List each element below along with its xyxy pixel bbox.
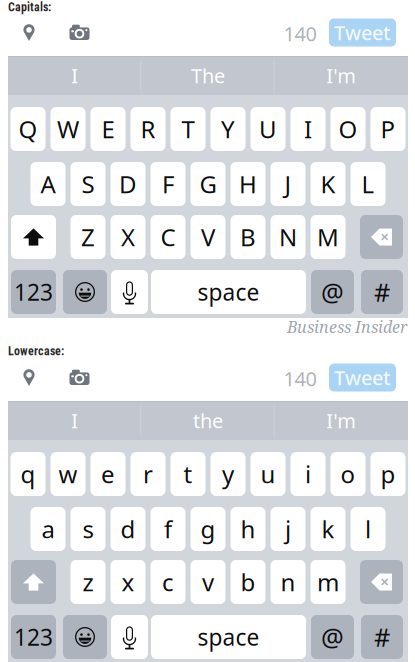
staticText: P bbox=[380, 113, 395, 145]
button[interactable]: W bbox=[50, 107, 85, 151]
staticText: m bbox=[317, 566, 339, 598]
button[interactable]: Delete bbox=[360, 560, 403, 604]
button[interactable]: d bbox=[110, 507, 145, 551]
staticText: @ bbox=[321, 620, 344, 654]
button[interactable]: s bbox=[70, 507, 105, 551]
staticText: 123 bbox=[14, 277, 53, 307]
staticText: H bbox=[239, 168, 257, 200]
button[interactable]: c bbox=[150, 560, 185, 604]
button[interactable]: @ bbox=[311, 615, 354, 659]
button[interactable]: B bbox=[230, 215, 265, 259]
button[interactable]: D bbox=[110, 162, 145, 206]
button[interactable]: z bbox=[70, 560, 105, 604]
button[interactable]: Add photo bbox=[64, 363, 94, 392]
staticText: J bbox=[284, 168, 291, 200]
button[interactable]: Q bbox=[10, 107, 45, 151]
button[interactable]: Add location bbox=[14, 363, 44, 392]
button[interactable]: J bbox=[270, 162, 305, 206]
button[interactable]: 123 bbox=[11, 270, 56, 314]
button[interactable]: Shift bbox=[11, 215, 56, 259]
button[interactable]: p bbox=[370, 452, 405, 496]
button[interactable]: V bbox=[190, 215, 225, 259]
staticText: D bbox=[119, 168, 137, 200]
button[interactable]: M bbox=[310, 215, 345, 259]
button[interactable]: space bbox=[151, 270, 306, 314]
button[interactable]: o bbox=[330, 452, 365, 496]
button[interactable]: @ bbox=[311, 270, 354, 314]
button[interactable]: T bbox=[170, 107, 205, 151]
button[interactable]: Delete bbox=[360, 215, 403, 259]
button[interactable]: I'm bbox=[275, 401, 408, 440]
button[interactable]: O bbox=[330, 107, 365, 151]
button[interactable]: i bbox=[290, 452, 325, 496]
staticText: Y bbox=[221, 113, 235, 145]
button[interactable]: # bbox=[361, 270, 403, 314]
button[interactable]: N bbox=[270, 215, 305, 259]
button[interactable]: Add photo bbox=[64, 18, 94, 47]
staticText: I bbox=[304, 113, 312, 145]
button[interactable]: K bbox=[310, 162, 345, 206]
button[interactable]: v bbox=[190, 560, 225, 604]
button[interactable]: F bbox=[150, 162, 185, 206]
button[interactable]: H bbox=[230, 162, 265, 206]
button[interactable]: space bbox=[151, 615, 306, 659]
button[interactable]: G bbox=[190, 162, 225, 206]
button[interactable]: I bbox=[8, 401, 141, 440]
button[interactable]: The bbox=[141, 56, 275, 95]
button[interactable]: x bbox=[110, 560, 145, 604]
button[interactable]: P bbox=[370, 107, 405, 151]
button[interactable]: C bbox=[150, 215, 185, 259]
button[interactable]: r bbox=[130, 452, 165, 496]
button[interactable]: e bbox=[90, 452, 125, 496]
staticText: c bbox=[162, 566, 174, 598]
button[interactable]: Dictate bbox=[111, 270, 148, 314]
button[interactable]: l bbox=[350, 507, 385, 551]
button[interactable]: Emoji bbox=[63, 270, 107, 314]
button[interactable]: h bbox=[230, 507, 265, 551]
button[interactable]: I bbox=[8, 56, 141, 95]
button[interactable]: j bbox=[270, 507, 305, 551]
button[interactable]: f bbox=[150, 507, 185, 551]
button[interactable]: R bbox=[130, 107, 165, 151]
button[interactable]: u bbox=[250, 452, 285, 496]
button[interactable]: # bbox=[361, 615, 403, 659]
button[interactable]: A bbox=[30, 162, 65, 206]
button[interactable]: g bbox=[190, 507, 225, 551]
staticText: Business Insider bbox=[287, 316, 407, 338]
button[interactable]: S bbox=[70, 162, 105, 206]
staticText: The bbox=[191, 62, 225, 89]
staticText: f bbox=[164, 513, 172, 545]
button[interactable]: Tweet bbox=[329, 363, 396, 391]
button[interactable]: Emoji bbox=[63, 615, 107, 659]
button[interactable]: k bbox=[310, 507, 345, 551]
staticText: k bbox=[321, 513, 334, 545]
staticText: M bbox=[317, 221, 339, 253]
button[interactable]: Z bbox=[70, 215, 105, 259]
button[interactable]: E bbox=[90, 107, 125, 151]
button[interactable]: the bbox=[141, 401, 275, 440]
button[interactable]: y bbox=[210, 452, 245, 496]
staticText: a bbox=[41, 513, 54, 545]
button[interactable]: n bbox=[270, 560, 305, 604]
staticText: b bbox=[240, 566, 255, 598]
button[interactable]: t bbox=[170, 452, 205, 496]
staticText: w bbox=[58, 458, 77, 490]
button[interactable]: L bbox=[350, 162, 385, 206]
button[interactable]: a bbox=[30, 507, 65, 551]
button[interactable]: 123 bbox=[11, 615, 56, 659]
button[interactable]: Add location bbox=[14, 18, 44, 47]
button[interactable]: w bbox=[50, 452, 85, 496]
staticText: z bbox=[82, 566, 93, 598]
button[interactable]: I'm bbox=[275, 56, 408, 95]
button[interactable]: Shift bbox=[11, 560, 56, 604]
button[interactable]: Dictate bbox=[111, 615, 148, 659]
staticText: t bbox=[183, 458, 192, 490]
button[interactable]: Y bbox=[210, 107, 245, 151]
button[interactable]: Tweet bbox=[329, 18, 396, 46]
button[interactable]: X bbox=[110, 215, 145, 259]
button[interactable]: m bbox=[310, 560, 345, 604]
button[interactable]: q bbox=[10, 452, 45, 496]
button[interactable]: U bbox=[250, 107, 285, 151]
button[interactable]: b bbox=[230, 560, 265, 604]
button[interactable]: I bbox=[290, 107, 325, 151]
